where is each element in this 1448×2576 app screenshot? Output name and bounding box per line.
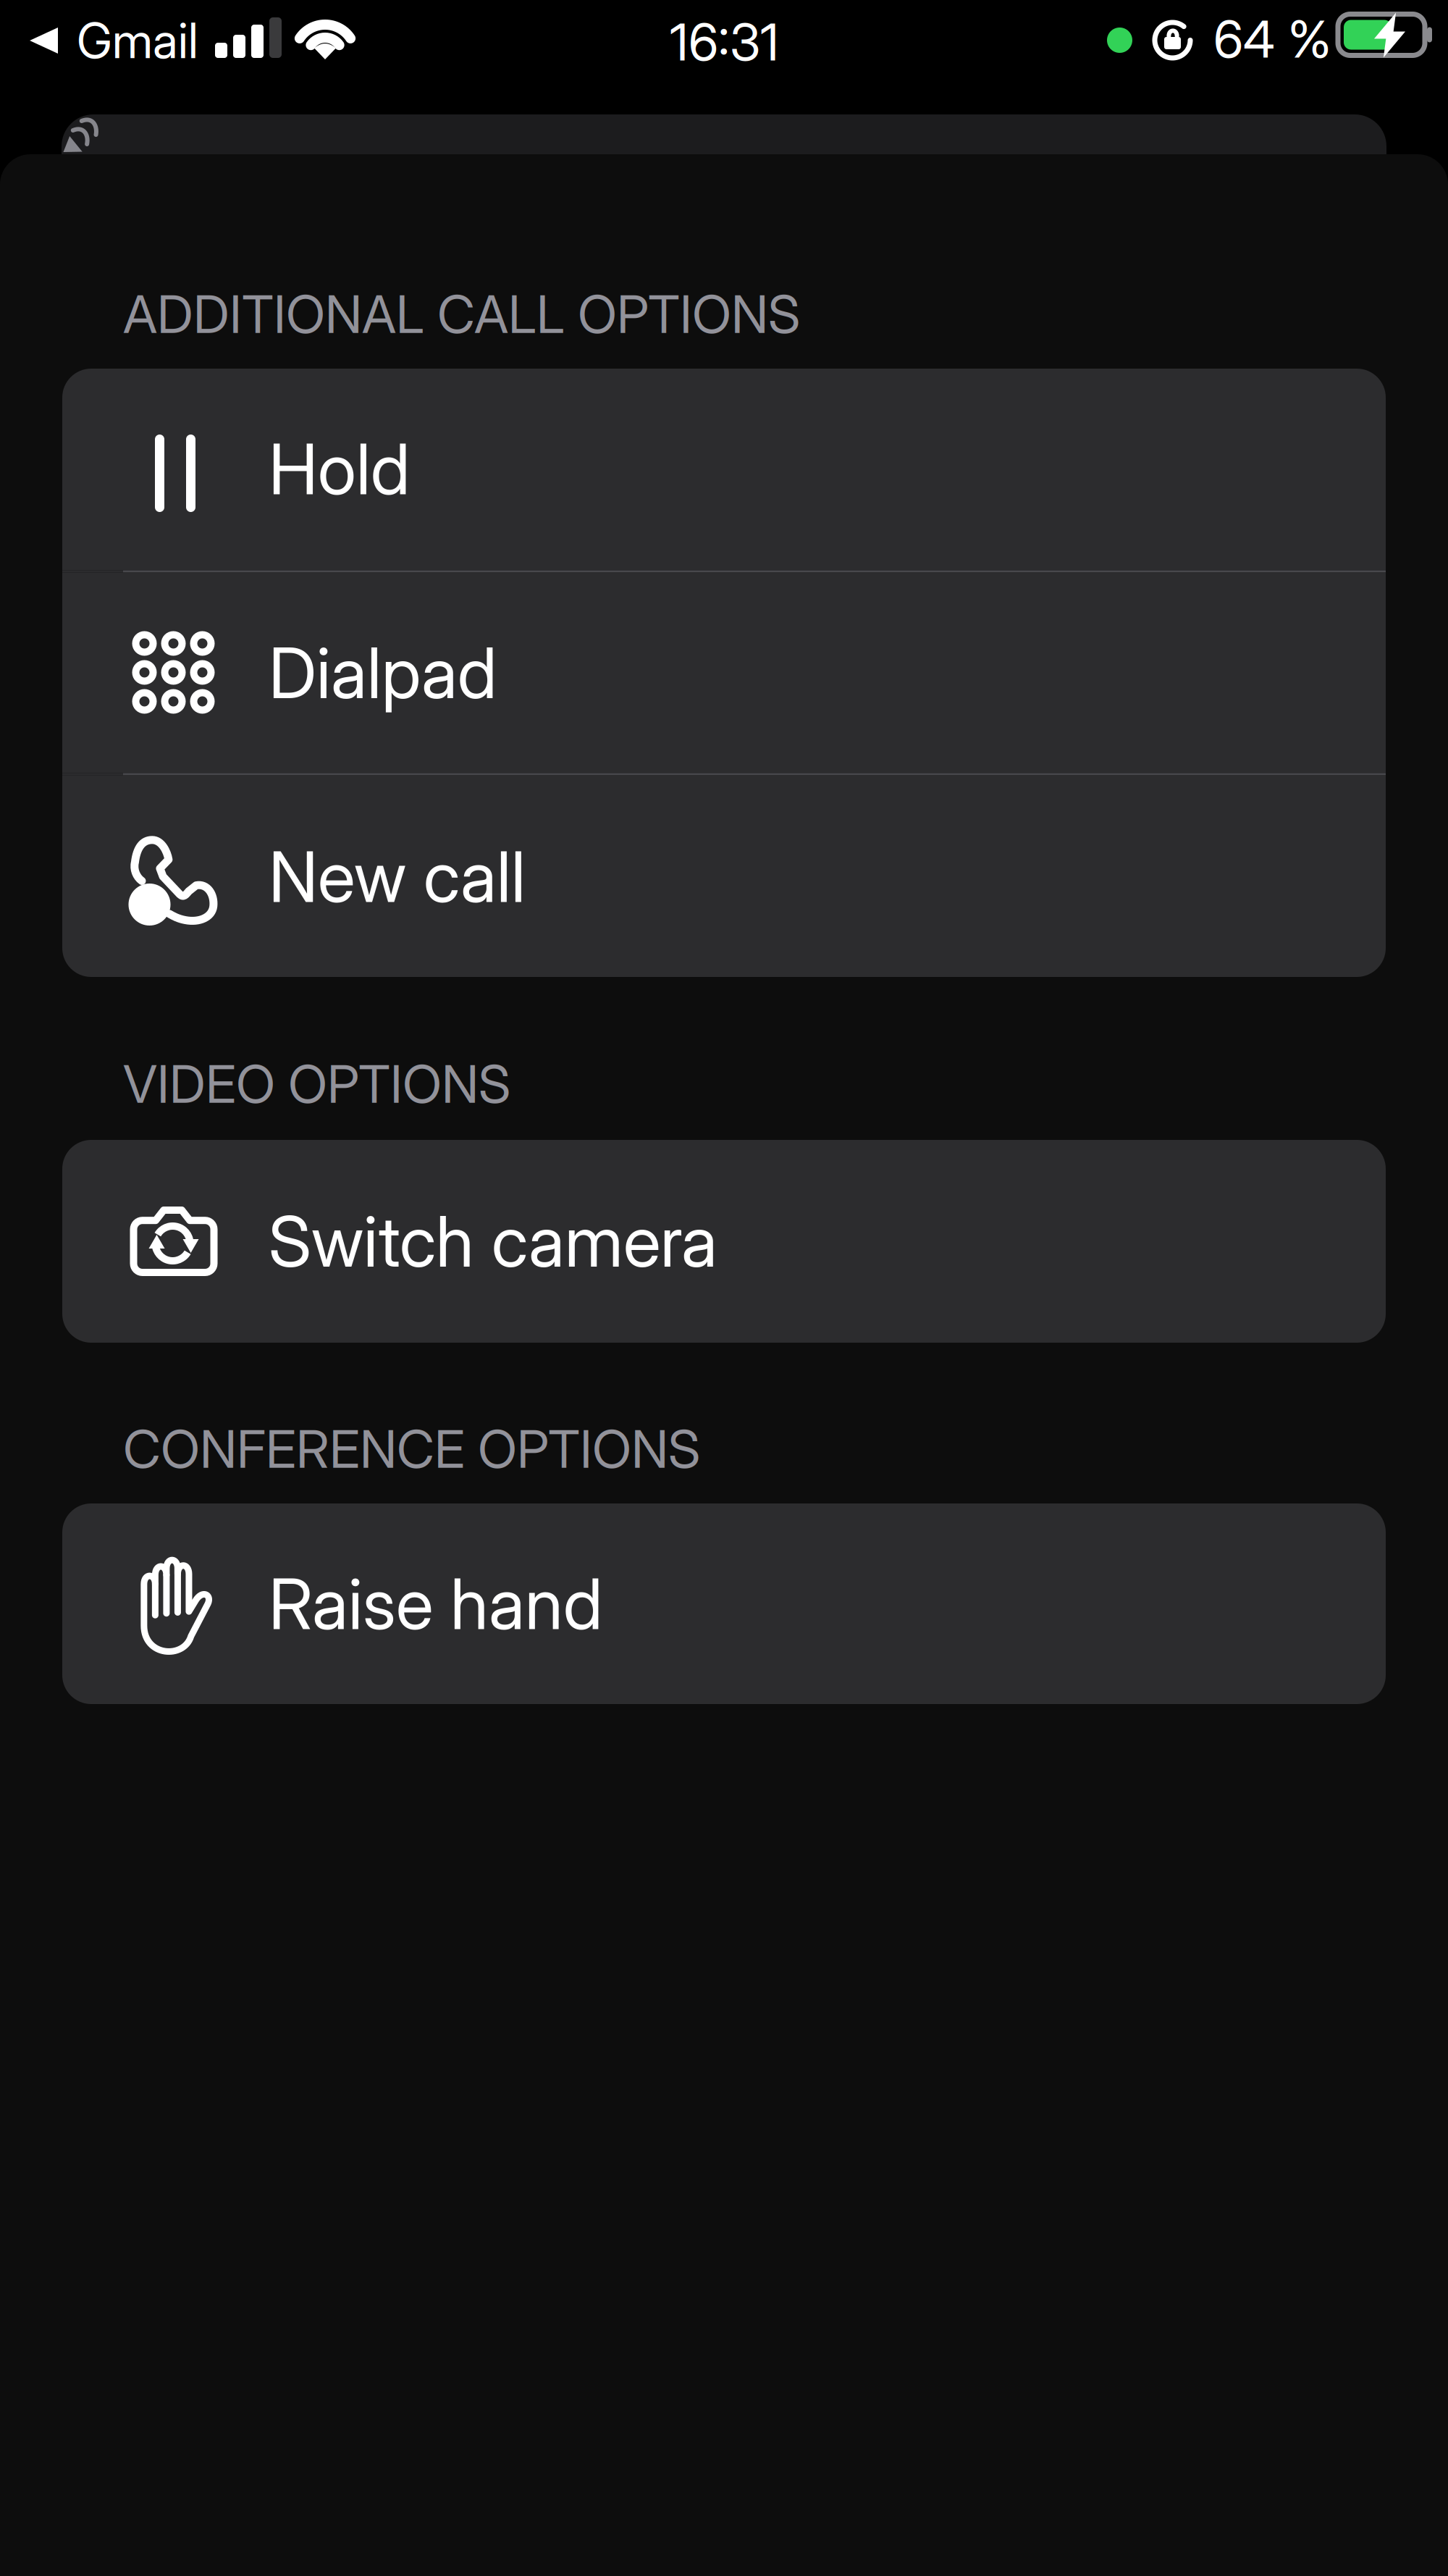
staticText: 64 % <box>1213 8 1331 70</box>
button[interactable]: Raise hand <box>62 1503 1386 1704</box>
staticText: VIDEO OPTIONS <box>123 1052 510 1115</box>
staticText: New call <box>269 835 526 919</box>
staticText: ADDITIONAL CALL OPTIONS <box>123 282 800 346</box>
staticText: CONFERENCE OPTIONS <box>123 1417 700 1480</box>
button[interactable]: Gmail <box>30 7 198 74</box>
button[interactable]: Switch camera <box>62 1140 1386 1343</box>
staticText: Raise hand <box>269 1562 602 1646</box>
button[interactable]: Hold <box>62 368 1386 570</box>
staticText: Dialpad <box>269 631 497 715</box>
staticText: Switch camera <box>269 1199 717 1283</box>
staticText: Gmail <box>77 11 198 70</box>
staticText: Hold <box>269 427 410 511</box>
button[interactable]: New call <box>62 775 1386 978</box>
button[interactable]: Dialpad <box>62 572 1386 773</box>
staticText: 16:31 <box>670 11 779 73</box>
